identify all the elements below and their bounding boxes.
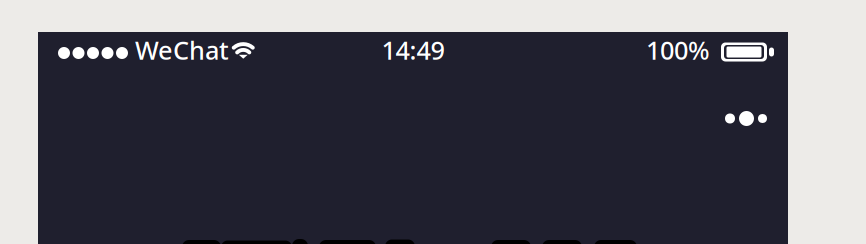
staticText: WeChat [135, 33, 229, 67]
button[interactable]: More [714, 97, 778, 140]
staticText: 100% [646, 33, 710, 67]
button[interactable]: Item 7 [542, 240, 582, 244]
button[interactable]: Item 2 [221, 240, 292, 244]
staticText: 14:49 [381, 33, 444, 67]
button[interactable]: Item 5 [385, 239, 415, 244]
button[interactable]: Item 6 [491, 240, 531, 244]
button[interactable]: Item 4 [319, 240, 376, 244]
button[interactable]: Item 8 [594, 240, 637, 244]
button[interactable]: Item 1 [182, 240, 221, 244]
button[interactable]: Item 3 [292, 239, 308, 244]
